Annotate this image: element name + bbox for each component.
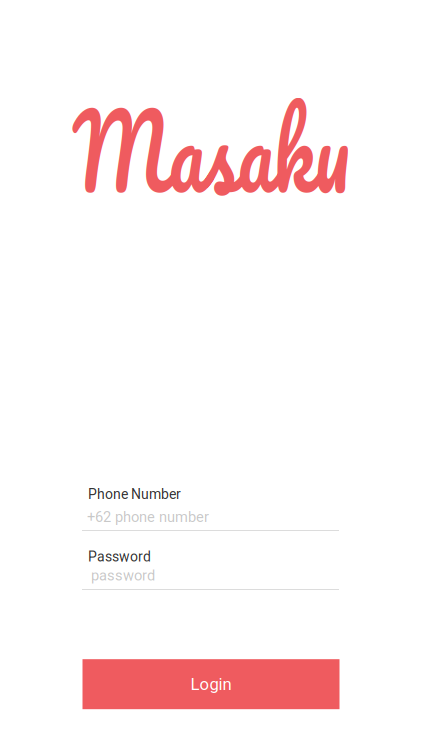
staticText: Masaku xyxy=(34,63,387,237)
staticText: +62 phone number xyxy=(87,508,209,526)
staticText: Login xyxy=(190,674,231,694)
staticText: Phone Number xyxy=(88,486,181,502)
staticText: Password xyxy=(88,549,151,565)
staticText: password xyxy=(91,567,155,584)
button[interactable]: Login xyxy=(82,659,339,709)
